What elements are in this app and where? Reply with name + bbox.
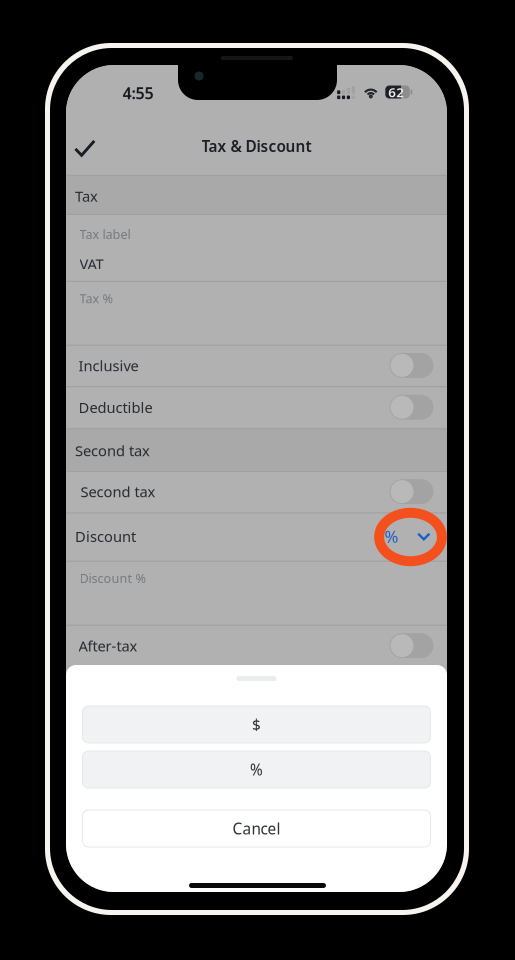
button[interactable]: Cancel [82, 810, 430, 847]
button[interactable]: Discount % [66, 561, 447, 625]
staticText: 4:55 [122, 82, 153, 104]
staticText: Inclusive [78, 355, 138, 375]
button[interactable]: Tax % [66, 281, 447, 345]
staticText: Tax label [79, 225, 130, 243]
button[interactable]: Tax label [66, 214, 447, 281]
button[interactable]: After-tax [66, 625, 447, 667]
staticText: % [250, 759, 263, 780]
staticText: $ [252, 714, 261, 735]
staticText: Second tax [75, 440, 150, 460]
staticText: Discount [75, 526, 136, 546]
staticText: Tax % [79, 290, 113, 307]
button[interactable]: Inclusive [66, 345, 447, 386]
button[interactable]: % [82, 751, 430, 788]
button[interactable]: Second tax [66, 471, 447, 512]
staticText: % [384, 525, 398, 548]
staticText: Tax & Discount [201, 136, 311, 156]
staticText: VAT [79, 254, 103, 274]
button[interactable]: Discount type [66, 512, 447, 561]
staticText: Tax [75, 186, 98, 206]
button[interactable]: Deductible [66, 386, 447, 428]
button[interactable]: $ [82, 706, 430, 743]
staticText: Second tax [80, 482, 155, 502]
button[interactable]: Done [66, 126, 118, 170]
staticText: Discount % [79, 570, 146, 587]
staticText: Deductible [78, 397, 152, 417]
staticText: Cancel [232, 818, 280, 839]
staticText: 62 [388, 83, 404, 101]
staticText: After-tax [78, 636, 137, 656]
